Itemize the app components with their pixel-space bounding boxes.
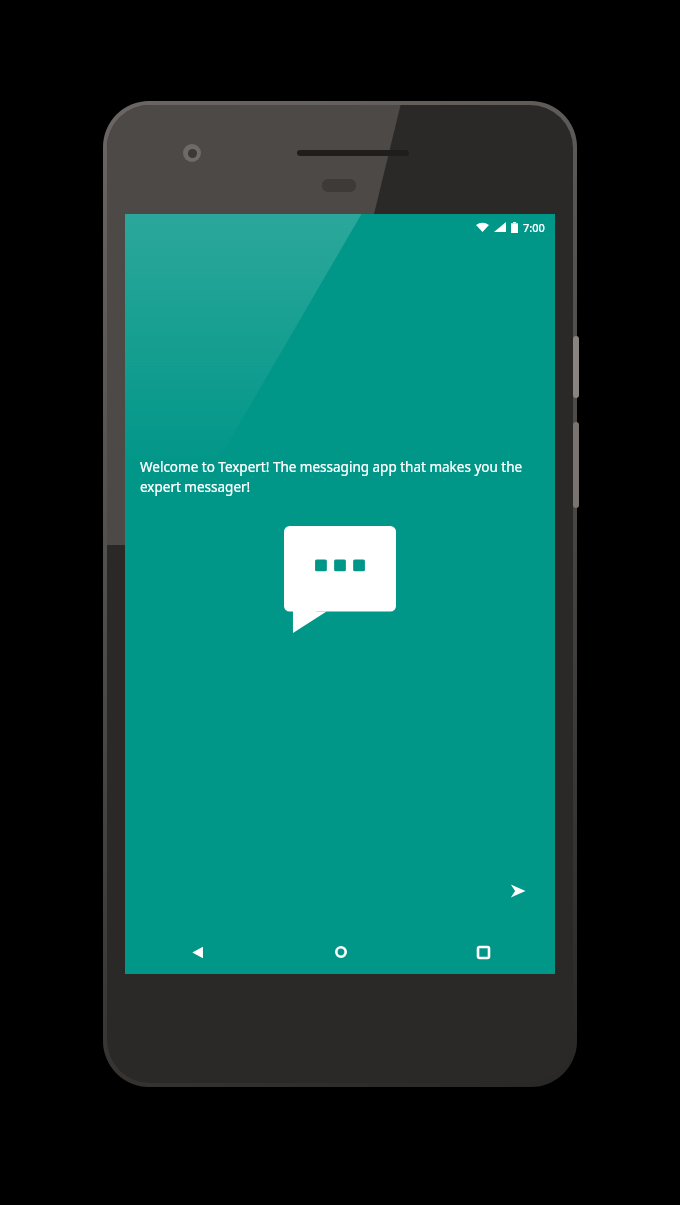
- staticText: 7:00: [523, 220, 545, 235]
- button[interactable]: Recents: [412, 930, 555, 974]
- button[interactable]: Back: [125, 930, 269, 974]
- staticText: Welcome to Texpert! The messaging app th…: [140, 458, 536, 496]
- button[interactable]: Home: [269, 930, 412, 974]
- button[interactable]: Send: [501, 874, 535, 908]
